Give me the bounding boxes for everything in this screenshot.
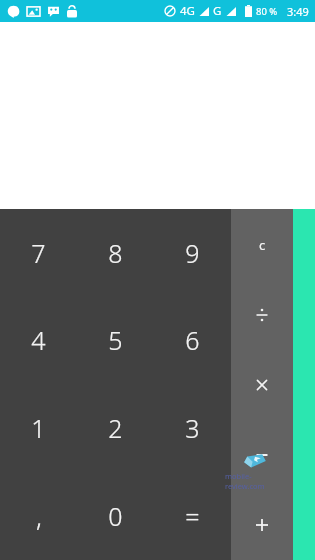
staticText: 5 [108,323,123,357]
staticText: 0 [108,499,123,533]
button[interactable]: 3 [154,384,231,472]
button[interactable]: Divide [231,280,293,350]
button[interactable]: 7 [0,209,77,296]
button[interactable]: Plus [231,490,293,560]
staticText: , [36,499,42,534]
staticText: 4G [180,3,195,19]
button[interactable]: Minus [231,420,293,490]
button[interactable]: 9 [154,209,231,296]
staticText: 6 [185,323,200,357]
button[interactable]: 5 [77,296,154,384]
staticText: 1 [31,411,46,445]
button[interactable]: , [0,472,77,560]
button[interactable]: 2 [77,384,154,472]
staticText: 9 [185,236,200,270]
staticText: = [185,499,200,533]
staticText: 3:49 [287,4,309,19]
staticText: G [213,3,222,19]
staticText: 4 [31,323,46,357]
staticText: 8 [108,236,123,270]
button[interactable]: 6 [154,296,231,384]
staticText: 2 [108,411,123,445]
button[interactable]: Clear [231,209,293,280]
staticText: c [259,236,266,254]
button[interactable]: 1 [0,384,77,472]
staticText: 3 [185,411,200,445]
button[interactable]: 4 [0,296,77,384]
button[interactable]: 0 [77,472,154,560]
staticText: mobile-review.com [225,471,287,491]
button[interactable]: = [154,472,231,560]
button[interactable]: Multiply [231,350,293,420]
staticText: 80 % [256,5,278,18]
button[interactable]: 8 [77,209,154,296]
staticText: 7 [31,236,46,270]
